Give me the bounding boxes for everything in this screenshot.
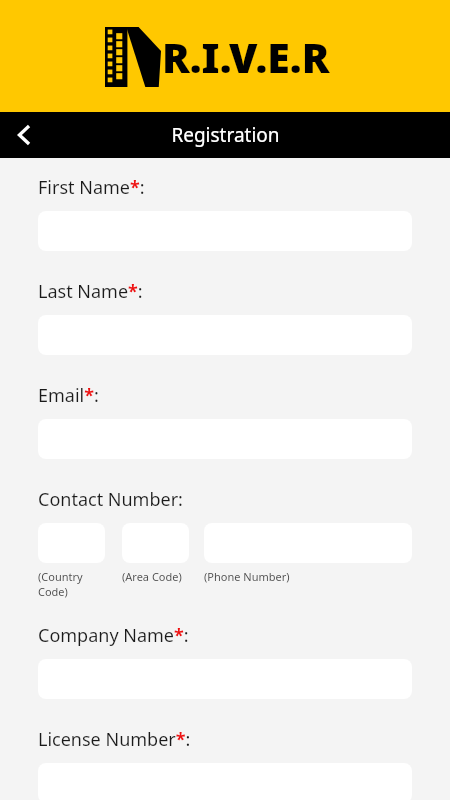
staticText: Company Name*: [38, 623, 189, 648]
staticText: (Country Code) [38, 569, 105, 599]
button[interactable]: Back [0, 112, 48, 158]
staticText: License Number*: [38, 727, 191, 752]
staticText: (Phone Number) [204, 569, 290, 584]
staticText: First Name*: [38, 175, 145, 200]
staticText: R.I.V.E.R [162, 29, 330, 85]
staticText: (Area Code) [122, 569, 182, 584]
staticText: Last Name*: [38, 279, 143, 304]
staticText: Contact Number: [38, 487, 183, 512]
staticText: Registration [171, 122, 280, 148]
staticText: Email*: [38, 383, 99, 408]
